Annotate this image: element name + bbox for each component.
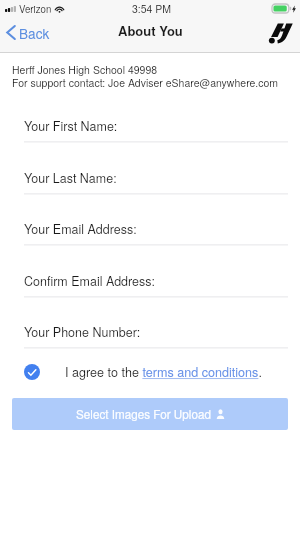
staticText: 3:54 PM <box>132 1 172 16</box>
staticText: Your Email Address: <box>24 220 137 238</box>
staticText: Your Last Name: <box>24 169 117 187</box>
staticText: Verizon <box>19 2 52 16</box>
button[interactable]: I agree checkbox <box>24 364 40 380</box>
button[interactable] <box>0 140 300 143</box>
staticText: Your Phone Number: <box>24 323 141 341</box>
staticText: Confirm Email Address: <box>24 272 156 290</box>
staticText: I agree to the terms and conditions. <box>65 363 262 381</box>
staticText: Herff Jones High School 49998 <box>12 62 158 77</box>
button[interactable] <box>0 192 300 195</box>
button[interactable]: Select Images For Upload <box>12 398 288 430</box>
staticText: Your First Name: <box>24 117 118 135</box>
button[interactable] <box>0 346 300 349</box>
staticText: Back <box>19 23 50 42</box>
staticText: For support contact: Joe Adviser eShare@… <box>12 75 279 90</box>
staticText: Select Images For Upload <box>76 406 211 423</box>
staticText: About You <box>118 21 183 40</box>
button[interactable] <box>0 243 300 246</box>
button[interactable]: Back <box>0 15 60 49</box>
button[interactable] <box>0 295 300 298</box>
button[interactable]: Herff Jones logo <box>268 23 296 45</box>
